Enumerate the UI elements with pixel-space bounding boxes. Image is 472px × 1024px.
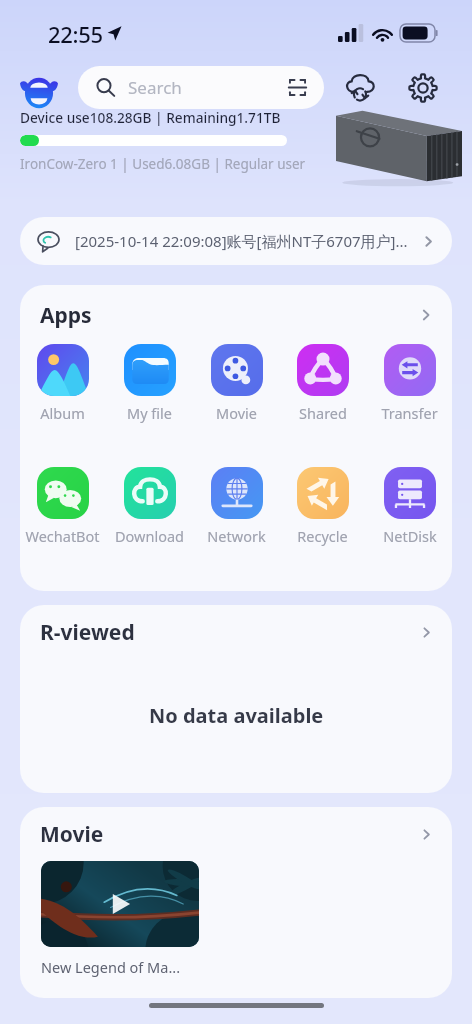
staticText: 22:55: [48, 19, 103, 49]
button[interactable]: Transfer: [368, 344, 451, 423]
staticText: Transfer: [381, 403, 438, 423]
button[interactable]: [2025-10-14 22:09:08]账号[福州NT子6707用户]...: [20, 217, 452, 265]
button[interactable]: Apps: [20, 285, 452, 345]
button[interactable]: Shared: [281, 344, 364, 423]
staticText: [2025-10-14 22:09:08]账号[福州NT子6707用户]...: [75, 231, 416, 251]
staticText: IronCow-Zero 1 | Used6.08GB | Regular us…: [20, 155, 306, 173]
staticText: New Legend of Ma...: [41, 957, 181, 977]
button[interactable]: NetDisk: [368, 467, 451, 546]
staticText: Network: [207, 526, 266, 546]
button[interactable]: Movie: [20, 807, 452, 861]
button[interactable]: Movie: [195, 344, 278, 423]
staticText: Album: [40, 403, 85, 423]
button[interactable]: Settings: [403, 68, 443, 108]
button[interactable]: Album: [21, 344, 104, 423]
button[interactable]: Search: [78, 66, 324, 109]
staticText: NetDisk: [383, 526, 437, 546]
staticText: My file: [127, 403, 172, 423]
button[interactable]: Recycle: [281, 467, 364, 546]
button[interactable]: R-viewed: [20, 605, 452, 659]
button[interactable]: WechatBot: [21, 467, 104, 546]
staticText: Movie: [216, 403, 257, 423]
staticText: Search: [128, 76, 287, 99]
staticText: WechatBot: [25, 526, 100, 546]
button[interactable]: New Legend of Ma...: [41, 861, 199, 977]
button[interactable]: Download: [108, 467, 191, 546]
staticText: R-viewed: [40, 618, 419, 647]
staticText: No data available: [149, 702, 324, 729]
button[interactable]: My file: [108, 344, 191, 423]
staticText: Shared: [299, 403, 347, 423]
staticText: Recycle: [297, 526, 348, 546]
button[interactable]: Network: [195, 467, 278, 546]
button[interactable]: Cloud sync: [340, 68, 380, 108]
staticText: Movie: [40, 820, 419, 849]
other: Scan: [287, 77, 308, 98]
staticText: Apps: [40, 301, 418, 330]
staticText: Download: [115, 526, 184, 546]
staticText: Device use108.28GB | Remaining1.71TB: [20, 108, 281, 127]
button[interactable]: IronCow logo: [15, 66, 63, 114]
